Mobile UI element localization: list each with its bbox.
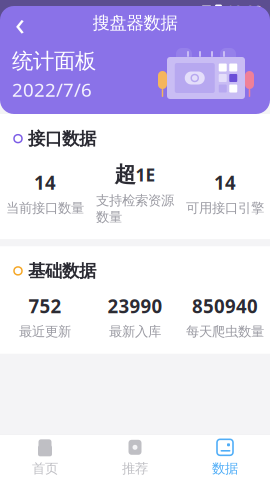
staticText: 850940 bbox=[192, 293, 258, 318]
staticText: 2022/7/6 bbox=[12, 77, 92, 102]
staticText: ‹ bbox=[15, 2, 25, 44]
staticText: 可用接口引擎 bbox=[186, 200, 264, 216]
button[interactable]: 推荐 bbox=[90, 431, 180, 480]
staticText: 每天爬虫数量 bbox=[186, 323, 264, 340]
staticText: 搜盘器数据 bbox=[92, 12, 177, 34]
staticText: 23990 bbox=[107, 293, 162, 318]
staticText: 首页 bbox=[32, 460, 58, 477]
staticText: 基础数据 bbox=[28, 260, 96, 281]
staticText: 推荐 bbox=[122, 460, 148, 477]
button[interactable]: Back bbox=[0, 6, 40, 40]
staticText: 统计面板 bbox=[12, 48, 96, 74]
staticText: 1E bbox=[135, 163, 155, 186]
staticText: 最新入库 bbox=[109, 323, 161, 340]
staticText: 支持检索资源数量 bbox=[96, 192, 174, 225]
button[interactable]: 首页 bbox=[0, 431, 90, 480]
staticText: 接口数据 bbox=[28, 128, 96, 149]
staticText: 14 bbox=[214, 170, 236, 195]
staticText: 14 bbox=[34, 170, 56, 195]
staticText: 当前接口数量 bbox=[6, 200, 84, 216]
button[interactable]: 数据 bbox=[180, 431, 270, 480]
staticText: 超 bbox=[114, 161, 135, 187]
staticText: 752 bbox=[28, 293, 61, 318]
staticText: 数据 bbox=[212, 460, 238, 477]
staticText: 10:09 bbox=[226, 0, 262, 20]
staticText: 最近更新 bbox=[19, 323, 71, 340]
